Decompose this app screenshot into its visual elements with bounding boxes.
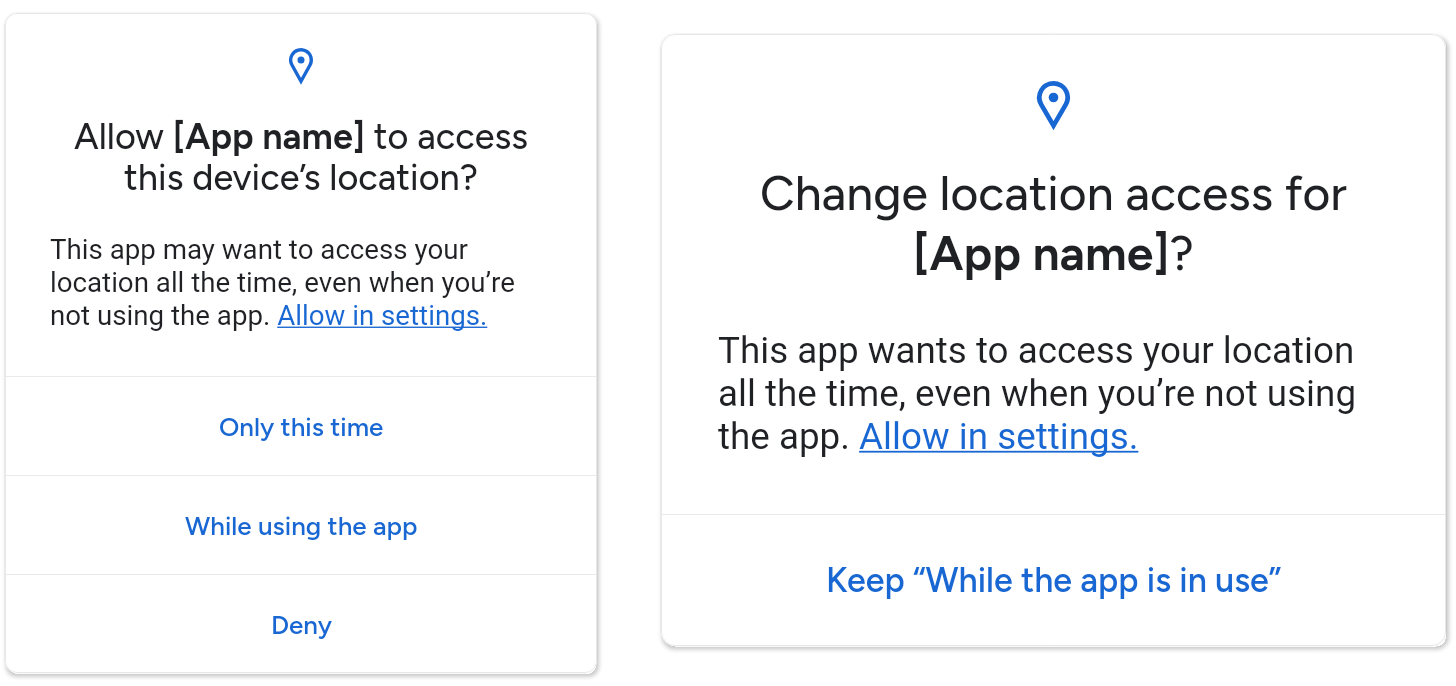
other: Location — [1037, 81, 1070, 128]
button[interactable]: Keep “While the app is in use” — [661, 515, 1446, 646]
button[interactable]: While using the app — [5, 476, 597, 574]
button[interactable]: Only this time — [5, 377, 597, 475]
button[interactable]: Allow in settings — [859, 416, 1140, 460]
staticText: While using the app — [185, 510, 418, 541]
button[interactable]: Allow in settings — [277, 300, 488, 334]
staticText: This app may want to access your locatio… — [50, 233, 585, 332]
button[interactable]: Deny — [5, 575, 597, 673]
staticText: Only this time — [219, 411, 384, 442]
staticText: This app wants to access your location a… — [718, 329, 1434, 458]
staticText: Deny — [271, 609, 332, 640]
other: Location — [289, 48, 313, 83]
staticText: Change location access for [App name]? — [661, 164, 1446, 282]
staticText: Keep “While the app is in use” — [826, 560, 1282, 601]
staticText: Allow [App name] to access this device’s… — [5, 115, 597, 199]
